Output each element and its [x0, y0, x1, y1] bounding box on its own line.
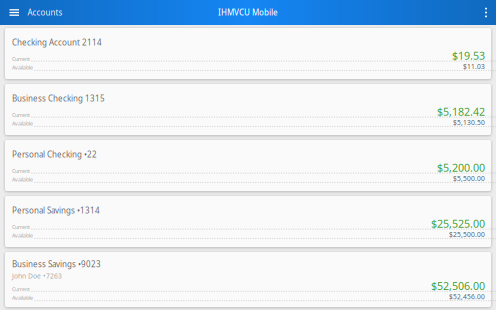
staticText: Business Savings •9023 — [12, 259, 101, 269]
staticText: Available — [12, 120, 33, 127]
staticText: $19.53 — [452, 48, 485, 63]
staticText: Personal Savings •1314 — [12, 205, 100, 216]
staticText: Current — [12, 286, 30, 293]
staticText: Personal Checking •22 — [12, 149, 97, 160]
staticText: Current — [12, 223, 30, 231]
staticText: Current — [12, 111, 30, 119]
staticText: Accounts — [27, 7, 62, 18]
staticText: Current — [12, 167, 30, 175]
staticText: $5,200.00 — [437, 160, 485, 175]
staticText: Available — [12, 176, 33, 183]
staticText: $25,525.00 — [431, 216, 485, 231]
button[interactable]: Business Savings •9023 — [5, 252, 491, 307]
staticText: $25,500.00 — [449, 230, 485, 239]
staticText: Business Checking 1315 — [12, 93, 105, 104]
button[interactable]: Personal Savings •1314 — [5, 196, 491, 247]
staticText: Current — [12, 55, 30, 63]
button[interactable]: Menu — [0, 0, 27, 25]
staticText: $52,506.00 — [431, 279, 485, 293]
staticText: John Doe •7263 — [12, 271, 62, 280]
staticText: Available — [12, 232, 33, 239]
staticText: $5,130.50 — [453, 118, 485, 127]
staticText: Available — [12, 294, 33, 301]
staticText: IHMVCU Mobile — [218, 7, 278, 18]
staticText: $52,456.00 — [449, 292, 485, 301]
button[interactable]: More options — [478, 0, 496, 25]
staticText: $5,500.00 — [453, 174, 485, 183]
button[interactable]: Personal Checking •22 — [5, 140, 491, 191]
staticText: Available — [12, 64, 33, 71]
button[interactable]: Checking Account 2114 — [5, 28, 491, 79]
staticText: $5,182.42 — [437, 104, 485, 119]
button[interactable]: Business Checking 1315 — [5, 84, 491, 135]
staticText: $11.03 — [463, 62, 485, 71]
staticText: Checking Account 2114 — [12, 37, 102, 48]
